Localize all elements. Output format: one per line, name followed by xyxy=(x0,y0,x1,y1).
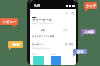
staticText: 表示中 xyxy=(39,43,45,45)
button[interactable]: Cart xyxy=(71,11,74,14)
button[interactable]: 新着 xyxy=(37,29,49,32)
staticText: 商品名 xyxy=(32,53,38,55)
staticText: 人気アイテムをチェック xyxy=(32,22,54,24)
staticText: おすすめアイテム特集 xyxy=(32,35,55,38)
button[interactable]: 人気順 xyxy=(81,29,96,37)
staticText: タップ xyxy=(86,4,96,8)
staticText: 人気順 xyxy=(84,30,94,34)
button[interactable] xyxy=(51,56,61,65)
staticText: 9:41 xyxy=(34,4,41,8)
staticText: 商品名 xyxy=(51,53,57,55)
staticText: サマーセール xyxy=(32,18,53,22)
staticText: 入荷日順に並んでいます xyxy=(32,47,51,49)
button[interactable]: 並べ替え xyxy=(65,43,74,46)
staticText: レビュー xyxy=(3,20,16,24)
button[interactable]: NEW xyxy=(8,41,23,50)
button[interactable]: タップ xyxy=(84,2,97,12)
button[interactable]: Search xyxy=(65,11,68,14)
staticText: 全42件 xyxy=(32,43,39,46)
staticText: 並べ替え xyxy=(65,43,74,46)
button[interactable]: レビュー xyxy=(0,18,18,28)
staticText: 新着 xyxy=(41,29,45,32)
staticText: 保存 xyxy=(77,50,84,54)
button[interactable]: 保存 xyxy=(73,49,87,57)
button[interactable] xyxy=(33,56,44,65)
button[interactable]: 人気 xyxy=(59,29,71,32)
staticText: 人気 xyxy=(63,29,67,32)
staticText: NEW xyxy=(12,43,20,47)
